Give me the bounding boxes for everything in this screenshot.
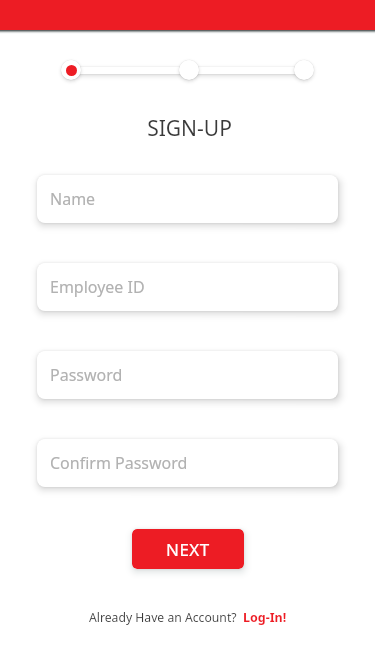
button[interactable]: Log-In! [243,609,287,626]
staticText: Already Have an Account? [89,609,237,626]
button[interactable]: Password [37,351,338,399]
button[interactable]: Step 1 of 3, current [61,60,81,80]
staticText: Name [50,188,96,210]
staticText: Password [50,364,123,386]
staticText: NEXT [166,538,210,561]
button[interactable]: Step 2 of 3 [179,60,199,80]
button[interactable]: Confirm Password [37,439,338,487]
staticText: Confirm Password [50,452,188,474]
button[interactable]: NEXT [132,529,244,569]
button[interactable]: Name [37,175,338,223]
staticText: SIGN-UP [2,114,375,143]
button[interactable]: Step 3 of 3 [294,60,314,80]
staticText: Employee ID [50,276,145,298]
button[interactable]: Employee ID [37,263,338,311]
